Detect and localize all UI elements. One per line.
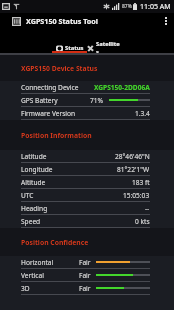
staticText: 3D	[21, 284, 30, 293]
staticText: XGPS150 Status Tool	[26, 16, 98, 26]
staticText: Firmware Version	[21, 109, 76, 118]
staticText: Satellites	[96, 40, 122, 56]
staticText: UTC	[21, 191, 34, 200]
staticText: 0 kts	[135, 217, 150, 226]
button[interactable]: More options	[158, 13, 174, 29]
button[interactable]: Horizontal	[0, 256, 174, 269]
staticText: 28°46'46"N	[115, 152, 150, 161]
button[interactable]: GPS Battery	[0, 94, 174, 107]
button[interactable]: Firmware Version	[0, 107, 174, 120]
button[interactable]: Connecting Device	[0, 81, 174, 94]
staticText: GPS Battery	[21, 96, 58, 105]
staticText: Horizontal	[21, 258, 54, 267]
button[interactable]: Latitude	[0, 150, 174, 163]
staticText: Position Information	[21, 131, 92, 140]
staticText: 15:05:03	[123, 191, 150, 200]
staticText: 71%	[90, 96, 104, 105]
button[interactable]: Speed	[0, 215, 174, 228]
staticText: Status	[65, 44, 84, 52]
button[interactable]: Longitude	[0, 163, 174, 176]
button[interactable]: Altitude	[0, 176, 174, 189]
staticText: XGPS150 Device Status	[21, 64, 98, 73]
staticText: Vertical	[21, 271, 44, 280]
staticText: Position Confidence	[21, 238, 89, 247]
staticText: Fair	[79, 271, 91, 280]
staticText: Connecting Device	[21, 83, 79, 92]
staticText: 183 ft	[132, 178, 150, 187]
staticText: --	[145, 204, 150, 213]
button[interactable]: Vertical	[0, 269, 174, 282]
staticText: Fair	[79, 284, 91, 293]
staticText: XGPS150-2DD06A	[94, 83, 150, 92]
staticText: Longitude	[21, 165, 53, 174]
button[interactable]: 3D	[0, 282, 174, 295]
staticText: 1.3.4	[135, 109, 150, 118]
staticText: Latitude	[21, 152, 47, 161]
button[interactable]: Status	[52, 40, 87, 56]
staticText: 87%	[122, 3, 132, 10]
button[interactable]: Satellites	[87, 40, 122, 56]
staticText: 81°22'1"W	[117, 165, 150, 174]
staticText: Speed	[21, 217, 41, 226]
button[interactable]: UTC	[0, 189, 174, 202]
staticText: Heading	[21, 204, 48, 213]
button[interactable]: Heading	[0, 202, 174, 215]
staticText: Fair	[79, 258, 91, 267]
staticText: Altitude	[21, 178, 46, 187]
staticText: 11:05 AM	[140, 2, 171, 12]
